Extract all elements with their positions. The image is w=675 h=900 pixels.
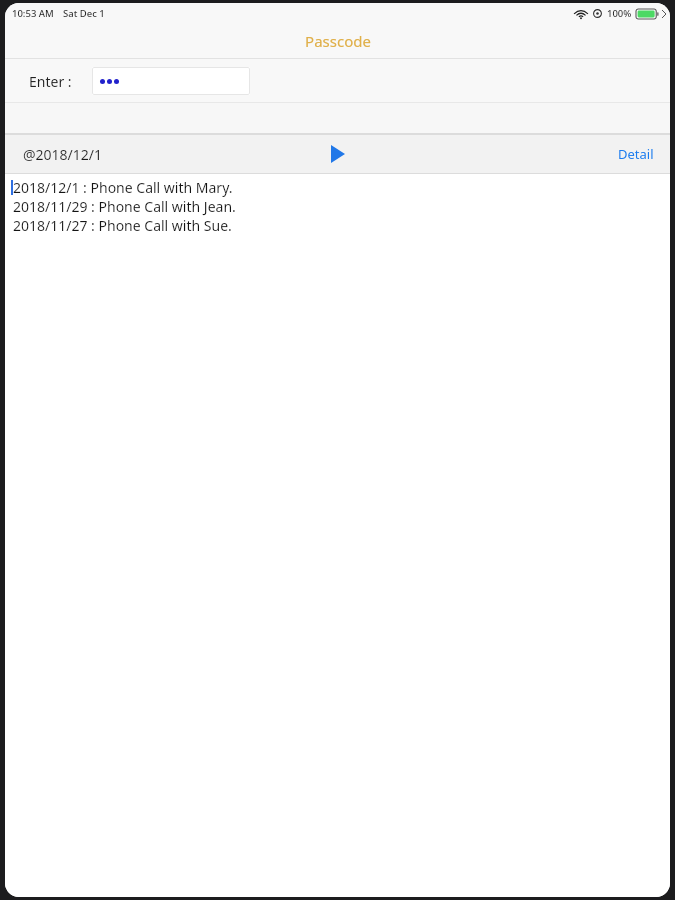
- staticText: 2018/12/1 : Phone Call with Mary.: [13, 178, 233, 197]
- staticText: 100%: [607, 7, 632, 20]
- button[interactable]: Detail: [612, 139, 660, 169]
- staticText: Passcode: [305, 31, 371, 51]
- staticText: 2018/11/27 : Phone Call with Sue.: [13, 216, 232, 235]
- button[interactable]: 2018/11/29 : Phone Call with Jean.: [11, 197, 236, 216]
- staticText: 2018/11/29 : Phone Call with Jean.: [13, 197, 236, 216]
- staticText: @2018/12/1: [23, 145, 103, 164]
- staticText: 10:53 AM: [12, 7, 54, 20]
- staticText: Enter :: [29, 72, 72, 91]
- staticText: Sat Dec 1: [63, 7, 105, 20]
- button[interactable]: Passcode input: [92, 67, 250, 95]
- button[interactable]: 2018/11/27 : Phone Call with Sue.: [11, 216, 232, 235]
- staticText: Detail: [618, 145, 654, 163]
- button[interactable]: 2018/12/1 : Phone Call with Mary.: [11, 178, 233, 197]
- button[interactable]: Play: [321, 137, 355, 171]
